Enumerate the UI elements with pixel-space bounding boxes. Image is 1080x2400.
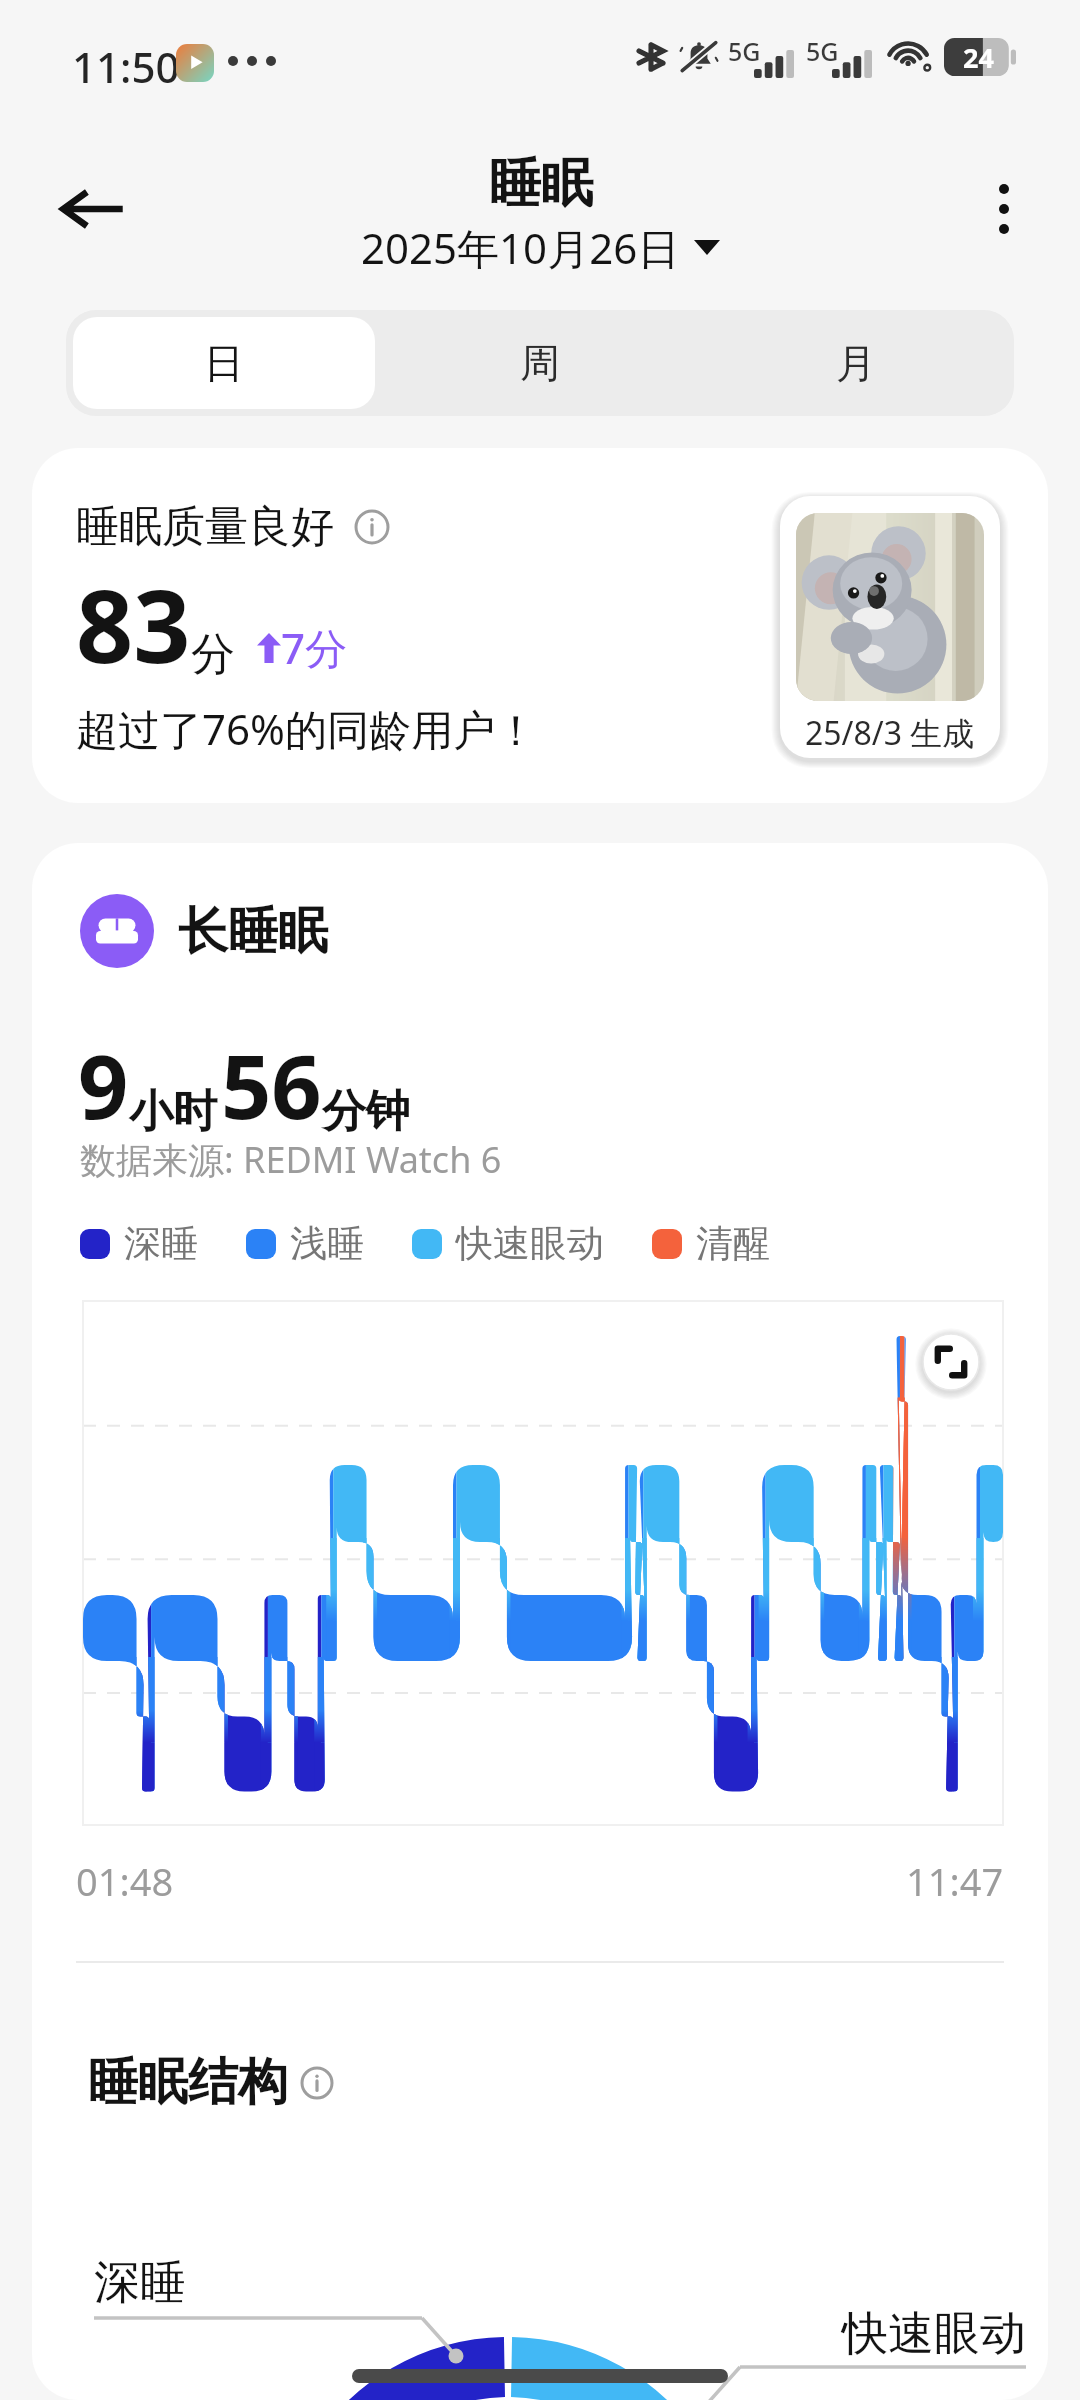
button[interactable]: 日 [73, 317, 375, 409]
button[interactable]: Back [42, 159, 142, 259]
button[interactable]: 月 [705, 317, 1007, 409]
staticText: 超过了76%的同龄用户！ [76, 700, 537, 757]
staticText: 7分 [281, 619, 348, 676]
staticText: 分 [191, 627, 235, 682]
staticText: 11:50 [72, 38, 180, 95]
staticText: 睡眠质量良好 [76, 500, 334, 554]
button[interactable]: More information [350, 505, 394, 549]
button[interactable]: More options [958, 163, 1050, 255]
staticText: 24 [963, 39, 994, 76]
staticText: 周 [520, 338, 560, 388]
staticText: 浅睡 [290, 1220, 364, 1267]
button[interactable]: 周 [389, 317, 691, 409]
staticText: 长睡眠 [178, 900, 328, 963]
staticText: 5G [806, 34, 839, 68]
button[interactable]: 睡眠质量良好 [32, 448, 1048, 803]
button[interactable]: More information [296, 2062, 338, 2104]
button[interactable]: 长睡眠 [80, 894, 328, 968]
staticText: 快速眼动 [456, 1220, 604, 1267]
staticText: 深睡 [94, 2254, 186, 2312]
staticText: 清醒 [696, 1220, 770, 1267]
staticText: 月 [836, 338, 876, 388]
staticText: 深睡 [124, 1220, 198, 1267]
staticText: 2025年10月26日 [361, 219, 680, 276]
staticText: 睡眠结构 [88, 2051, 288, 2114]
staticText: 数据来源: REDMI Watch 6 [80, 1135, 502, 1184]
button[interactable]: 睡眠结构 [88, 2051, 338, 2114]
staticText: 25/8/3 生成 [805, 711, 975, 755]
button[interactable]: Expand chart [923, 1334, 979, 1390]
staticText: 5G [728, 34, 761, 68]
staticText: 9 [78, 1025, 129, 1145]
staticText: 01:48 [76, 1855, 174, 1907]
staticText: 日 [204, 338, 244, 388]
staticText: 分钟 [322, 1084, 410, 1139]
button[interactable]: 2025年10月26日 [361, 219, 720, 276]
staticText: 83 [76, 556, 191, 692]
staticText: 56 [221, 1025, 322, 1145]
button[interactable]: 25/8/3 生成 [780, 496, 1000, 758]
staticText: 11:47 [906, 1855, 1004, 1907]
staticText: 睡眠 [489, 151, 593, 217]
staticText: 快速眼动 [842, 2305, 1026, 2363]
staticText: 小时 [129, 1084, 217, 1139]
